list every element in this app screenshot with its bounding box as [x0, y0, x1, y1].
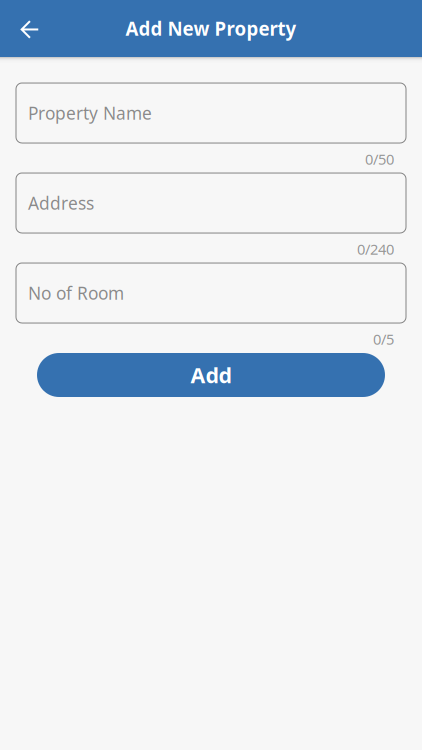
button[interactable]: Property Name — [16, 83, 406, 143]
staticText: 0/240 — [357, 239, 394, 259]
staticText: No of Room — [28, 281, 124, 304]
button[interactable]: No of Room — [16, 263, 406, 323]
staticText: Property Name — [28, 101, 152, 124]
button[interactable]: Back — [6, 0, 54, 57]
staticText: 0/50 — [365, 149, 394, 169]
button[interactable]: Add — [37, 353, 385, 397]
staticText: Add New Property — [125, 16, 296, 41]
staticText: Address — [28, 191, 94, 214]
button[interactable]: Address — [16, 173, 406, 233]
staticText: Add — [190, 361, 231, 389]
staticText: 0/5 — [373, 329, 394, 349]
